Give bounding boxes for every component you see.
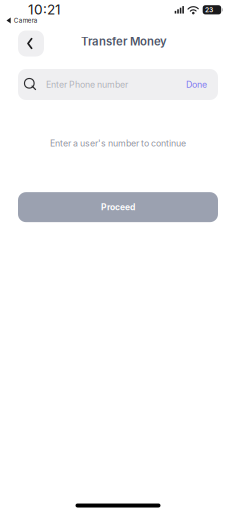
button[interactable]: Proceed bbox=[18, 192, 218, 222]
staticText: Proceed bbox=[101, 202, 135, 212]
staticText: Enter Phone number bbox=[46, 79, 128, 90]
staticText: Camera bbox=[14, 17, 38, 24]
staticText: 10:21 bbox=[28, 1, 61, 18]
staticText: Done bbox=[186, 79, 207, 90]
staticText: Transfer Money bbox=[81, 35, 167, 48]
button[interactable]: Done bbox=[179, 70, 214, 99]
button[interactable]: Back bbox=[18, 30, 44, 56]
staticText: 23 bbox=[205, 6, 213, 14]
staticText: Enter a user's number to continue bbox=[50, 138, 186, 149]
